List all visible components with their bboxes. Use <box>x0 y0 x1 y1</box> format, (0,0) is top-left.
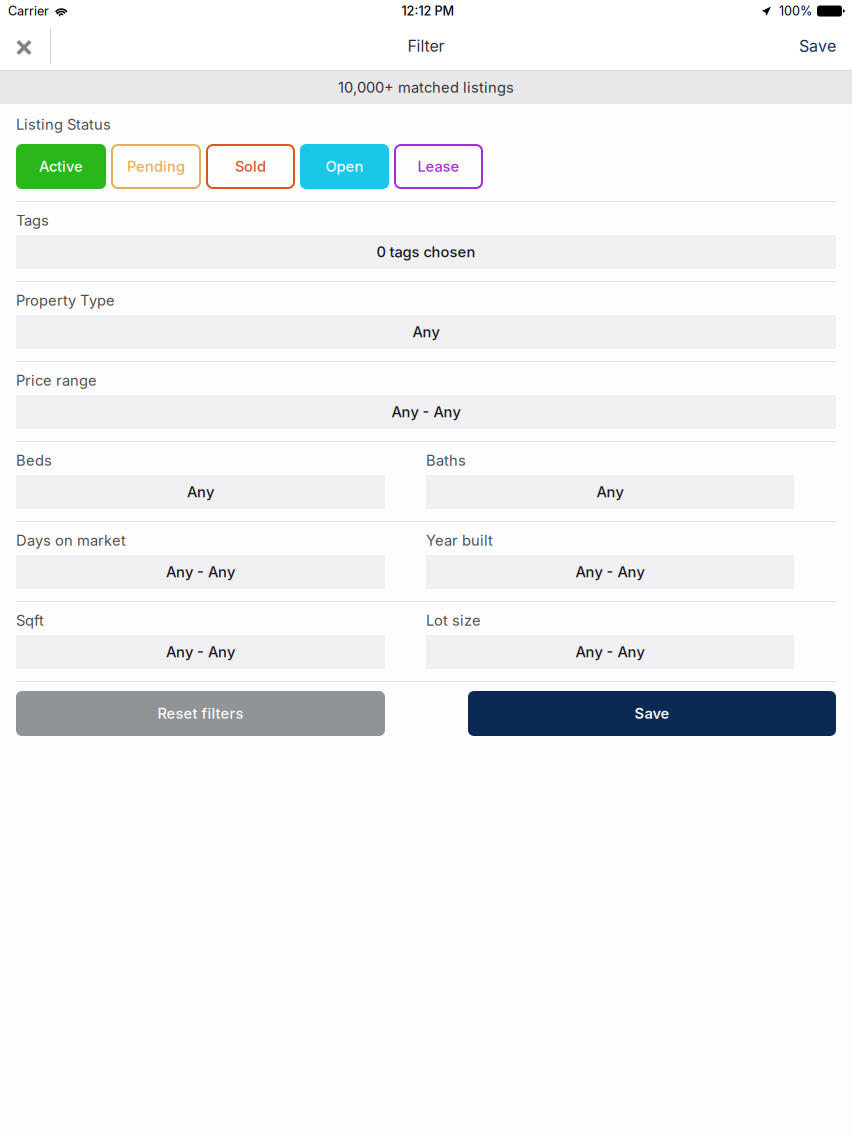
button[interactable]: Active <box>16 144 106 189</box>
button[interactable]: Any - Any <box>16 555 385 589</box>
button[interactable]: 0 tags chosen <box>16 235 836 269</box>
staticText: Any - Any <box>391 403 460 421</box>
staticText: Filter <box>407 36 444 56</box>
staticText: Tags <box>16 212 49 229</box>
button[interactable]: Any - Any <box>16 635 385 669</box>
staticText: 12:12 PM <box>401 3 454 19</box>
staticText: Any <box>412 323 439 341</box>
button[interactable]: Pending <box>111 144 201 189</box>
staticText: Year built <box>426 532 493 549</box>
staticText: Reset filters <box>157 705 243 722</box>
staticText: Carrier <box>8 3 49 19</box>
staticText: Sqft <box>16 612 44 629</box>
staticText: Price range <box>16 372 97 389</box>
button[interactable]: Save <box>787 22 852 70</box>
button[interactable]: Lease <box>394 144 483 189</box>
staticText: Days on market <box>16 532 126 549</box>
staticText: 10,000+ matched listings <box>338 79 514 96</box>
staticText: Any - Any <box>575 643 644 661</box>
staticText: Sold <box>235 158 266 175</box>
staticText: Any - Any <box>166 563 235 581</box>
staticText: Baths <box>426 452 466 469</box>
staticText: Save <box>634 705 669 722</box>
staticText: 100% <box>779 3 812 19</box>
staticText: 0 tags chosen <box>376 243 475 261</box>
staticText: Save <box>799 36 836 56</box>
staticText: Pending <box>127 158 185 175</box>
staticText: Open <box>325 158 363 175</box>
staticText: Any - Any <box>575 563 644 581</box>
button[interactable]: Any - Any <box>16 395 836 429</box>
button[interactable]: Any <box>426 475 794 509</box>
button[interactable]: Any - Any <box>426 555 794 589</box>
staticText: Listing Status <box>16 116 111 133</box>
staticText: Beds <box>16 452 52 469</box>
button[interactable]: Save <box>468 691 836 736</box>
staticText: Lease <box>417 158 459 175</box>
button[interactable]: Reset filters <box>16 691 385 736</box>
staticText: Property Type <box>16 292 115 309</box>
button[interactable]: Any - Any <box>426 635 794 669</box>
button[interactable]: Sold <box>206 144 295 189</box>
button[interactable]: Close <box>0 22 50 70</box>
staticText: Lot size <box>426 612 481 629</box>
staticText: Any <box>596 483 623 501</box>
staticText: Any <box>187 483 214 501</box>
button[interactable]: Any <box>16 475 385 509</box>
button[interactable]: Any <box>16 315 836 349</box>
staticText: Active <box>39 158 83 175</box>
button[interactable]: Open <box>300 144 389 189</box>
staticText: Any - Any <box>166 643 235 661</box>
